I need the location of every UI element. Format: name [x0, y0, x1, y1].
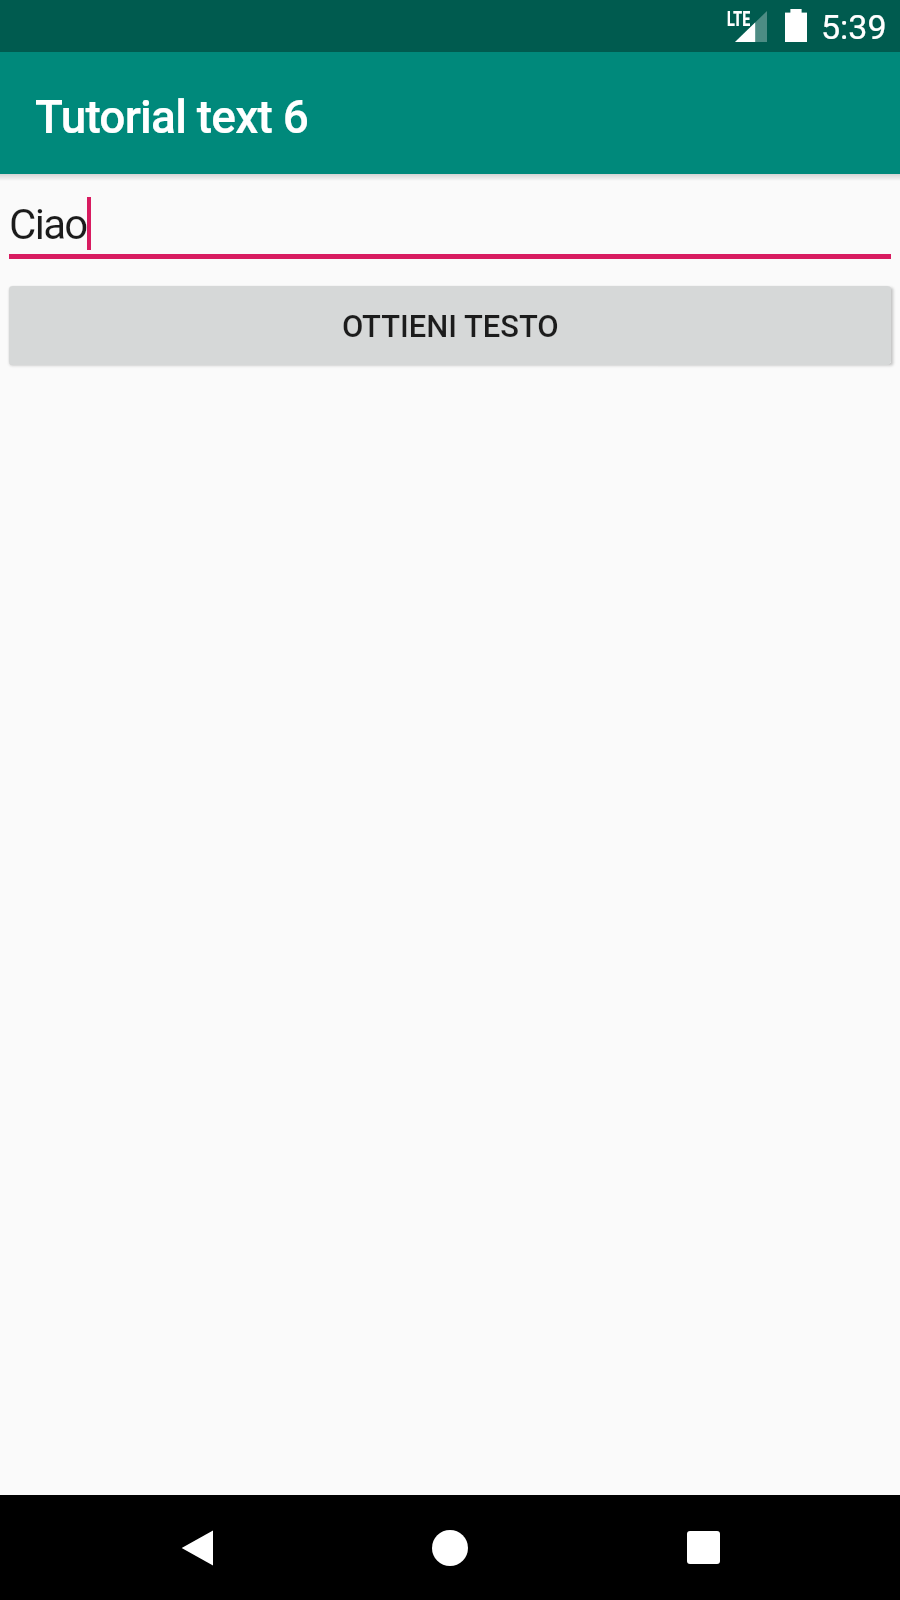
staticText: Ciao — [9, 200, 87, 249]
button[interactable]: Home — [363, 1495, 537, 1600]
button[interactable]: Tutorial text 6 — [0, 52, 900, 174]
staticText: 5:39 — [821, 7, 887, 47]
staticText: LTE — [727, 7, 751, 32]
button[interactable]: OTTIENI TESTO — [9, 286, 891, 365]
button[interactable]: Recent apps — [616, 1495, 790, 1600]
staticText: OTTIENI TESTO — [342, 308, 559, 344]
button[interactable]: Text input field — [9, 186, 891, 259]
button[interactable]: Back — [110, 1495, 284, 1600]
staticText: Tutorial text 6 — [35, 90, 309, 144]
